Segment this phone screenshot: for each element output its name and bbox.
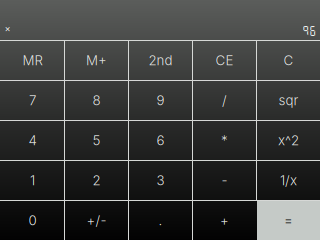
staticText: .	[158, 212, 162, 228]
button[interactable]: .	[129, 201, 192, 240]
staticText: 8	[92, 92, 100, 108]
button[interactable]: 2	[65, 161, 128, 200]
button[interactable]: M+	[65, 41, 128, 80]
button[interactable]: 6	[129, 121, 192, 160]
button[interactable]: C	[257, 41, 320, 80]
staticText: 5	[92, 132, 100, 148]
button[interactable]: 1	[1, 161, 64, 200]
button[interactable]: -	[193, 161, 256, 200]
staticText: CE	[215, 52, 233, 68]
staticText: C	[283, 52, 293, 68]
button[interactable]: +/-	[65, 201, 128, 240]
staticText: 4	[28, 132, 36, 148]
staticText: 2nd	[148, 52, 172, 68]
staticText: +/-	[86, 212, 106, 228]
staticText: 6	[156, 132, 164, 148]
button[interactable]: x^2	[257, 121, 320, 160]
button[interactable]: 2nd	[129, 41, 192, 80]
staticText: -	[221, 172, 227, 188]
button[interactable]: 9	[129, 81, 192, 120]
button[interactable]: CE	[193, 41, 256, 80]
staticText: 0	[28, 212, 36, 228]
staticText: 7	[29, 92, 36, 108]
staticText: *	[221, 132, 228, 148]
staticText: MR	[22, 52, 42, 68]
staticText: 1/x	[280, 172, 297, 188]
button[interactable]: 0	[1, 201, 64, 240]
button[interactable]: =	[257, 201, 320, 240]
button[interactable]: +	[193, 201, 256, 240]
button[interactable]: 1/x	[257, 161, 320, 200]
button[interactable]: 3	[129, 161, 192, 200]
button[interactable]: 8	[65, 81, 128, 120]
staticText: x^2	[278, 132, 299, 148]
staticText: M+	[86, 52, 107, 68]
staticText: 1	[30, 172, 35, 188]
staticText: 3	[156, 172, 164, 188]
button[interactable]: 7	[1, 81, 64, 120]
staticText: =	[284, 212, 293, 228]
staticText: 96	[302, 25, 316, 37]
staticText: 2	[92, 172, 100, 188]
button[interactable]: sqr	[257, 81, 320, 120]
button[interactable]: 5	[65, 121, 128, 160]
staticText: +	[220, 212, 229, 228]
staticText: sqr	[278, 92, 298, 108]
staticText: /	[222, 92, 227, 108]
button[interactable]: /	[193, 81, 256, 120]
staticText: 9	[156, 92, 164, 108]
staticText: ×	[4, 23, 10, 34]
button[interactable]: 4	[1, 121, 64, 160]
button[interactable]: MR	[1, 41, 64, 80]
button[interactable]: *	[193, 121, 256, 160]
